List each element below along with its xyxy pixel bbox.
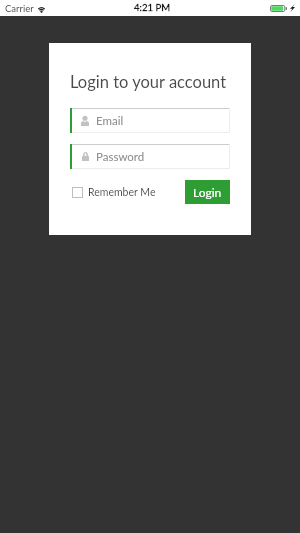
staticText: Login to your account <box>70 72 227 92</box>
staticText: 4:21 PM <box>134 2 171 14</box>
staticText: Remember Me <box>88 186 156 199</box>
staticText: Login <box>193 185 222 199</box>
staticText: Carrier <box>5 3 34 14</box>
staticText: Email <box>96 114 124 128</box>
button[interactable]: Remember Me <box>70 186 156 199</box>
button[interactable]: Password <box>70 144 230 169</box>
button[interactable]: Email <box>70 108 230 133</box>
staticText: Password <box>96 150 145 164</box>
button[interactable]: Login <box>185 180 230 204</box>
